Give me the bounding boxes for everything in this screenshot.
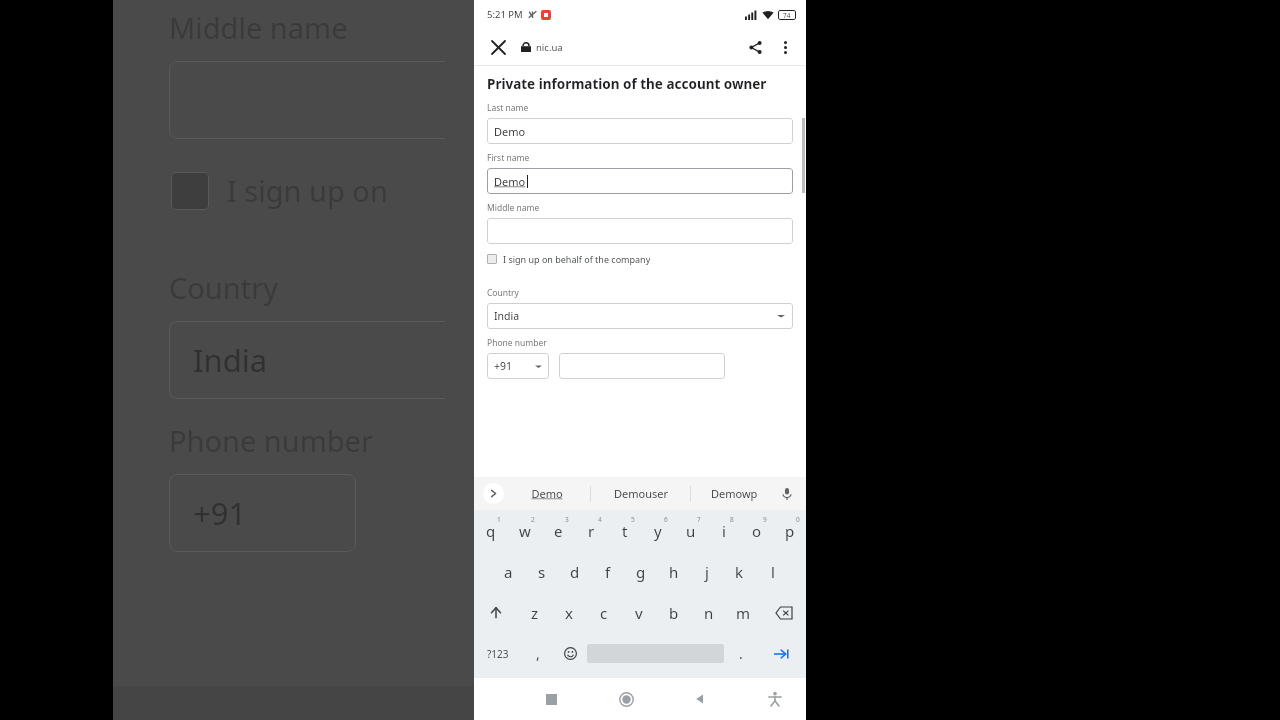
staticText: 5 bbox=[631, 515, 635, 524]
button[interactable]: Home bbox=[609, 682, 643, 716]
button[interactable]: Demouser bbox=[591, 477, 690, 510]
button[interactable]: Backspace bbox=[761, 592, 806, 633]
staticText: v bbox=[635, 603, 643, 623]
button[interactable] bbox=[487, 218, 793, 244]
button[interactable]: v bbox=[621, 592, 656, 633]
staticText: First name bbox=[487, 152, 530, 164]
staticText: 3 bbox=[565, 515, 569, 524]
staticText: 7 bbox=[697, 515, 701, 524]
staticText: I sign up on behalf of the company bbox=[559, 171, 806, 210]
button[interactable]: y bbox=[641, 510, 674, 551]
staticText: l bbox=[771, 562, 775, 582]
staticText: 1 bbox=[497, 515, 501, 524]
button[interactable]: India bbox=[487, 303, 793, 329]
staticText: w bbox=[519, 521, 531, 541]
staticText: n bbox=[704, 603, 714, 623]
staticText: I sign up on behalf of the company bbox=[503, 253, 651, 265]
button[interactable]: Demowp bbox=[691, 477, 777, 510]
button[interactable]: Demo bbox=[487, 118, 793, 144]
staticText: Demo bbox=[494, 174, 526, 189]
button[interactable]: More options bbox=[772, 34, 798, 60]
button[interactable] bbox=[559, 353, 725, 379]
staticText: Phone number bbox=[487, 337, 547, 349]
button[interactable]: x bbox=[552, 592, 586, 633]
staticText: g bbox=[636, 562, 646, 582]
staticText: ?123 bbox=[487, 647, 509, 661]
staticText: i bbox=[722, 521, 726, 541]
button[interactable]: Demo bbox=[504, 477, 590, 510]
button[interactable]: +91 bbox=[487, 353, 549, 379]
button[interactable]: Voice input bbox=[777, 484, 797, 504]
staticText: q bbox=[486, 521, 496, 541]
staticText: India bbox=[494, 309, 520, 323]
staticText: Demouser bbox=[614, 486, 668, 501]
staticText: Middle name bbox=[487, 202, 540, 214]
button[interactable]: Accessibility bbox=[758, 682, 792, 716]
staticText: Country bbox=[169, 268, 278, 307]
button[interactable]: h bbox=[657, 551, 690, 592]
button[interactable]: i bbox=[707, 510, 740, 551]
button[interactable]: d bbox=[558, 551, 591, 592]
button[interactable]: Shift bbox=[474, 592, 518, 633]
button[interactable]: Close bbox=[487, 36, 509, 58]
staticText: d bbox=[570, 562, 580, 582]
button[interactable]: . bbox=[724, 633, 757, 674]
staticText: Country bbox=[501, 268, 610, 307]
button[interactable]: u bbox=[674, 510, 707, 551]
staticText: Demo bbox=[494, 124, 526, 139]
button[interactable]: b bbox=[656, 592, 691, 633]
button[interactable]: z bbox=[518, 592, 552, 633]
button[interactable]: ?123 bbox=[474, 633, 522, 674]
button[interactable]: q bbox=[474, 510, 508, 551]
staticText: I sign up on behalf of the company bbox=[227, 171, 474, 210]
staticText: c bbox=[600, 603, 608, 623]
button[interactable]: m bbox=[726, 592, 761, 633]
button[interactable]: Demo bbox=[487, 168, 793, 194]
button[interactable]: o bbox=[740, 510, 773, 551]
button[interactable]: w bbox=[508, 510, 542, 551]
staticText: Middle name bbox=[501, 8, 680, 47]
button[interactable]: g bbox=[624, 551, 657, 592]
staticText: Last name bbox=[487, 102, 529, 114]
button[interactable]: Back bbox=[683, 682, 717, 716]
staticText: 4 bbox=[598, 515, 602, 524]
button[interactable]: l bbox=[756, 551, 789, 592]
button[interactable]: t bbox=[608, 510, 641, 551]
button[interactable]: Emoji bbox=[554, 633, 587, 674]
button[interactable]: f bbox=[591, 551, 624, 592]
staticText: Middle name bbox=[169, 8, 348, 47]
button[interactable]: Recent apps bbox=[534, 682, 568, 716]
staticText: +91 bbox=[193, 492, 247, 534]
staticText: , bbox=[536, 644, 540, 663]
button[interactable]: a bbox=[492, 551, 525, 592]
staticText: Private information of the account owner bbox=[487, 75, 767, 93]
staticText: +91 bbox=[494, 359, 513, 373]
staticText: z bbox=[531, 603, 539, 623]
button[interactable]: p bbox=[773, 510, 806, 551]
button[interactable]: Expand toolbar bbox=[483, 483, 504, 504]
staticText: +91 bbox=[525, 492, 579, 534]
staticText: 0 bbox=[796, 515, 800, 524]
button[interactable]: j bbox=[690, 551, 723, 592]
staticText: m bbox=[736, 603, 751, 623]
button[interactable]: Share bbox=[742, 34, 768, 60]
button[interactable]: Next field bbox=[757, 633, 806, 674]
button[interactable]: c bbox=[586, 592, 621, 633]
button[interactable]: n bbox=[691, 592, 726, 633]
staticText: f bbox=[605, 562, 611, 582]
staticText: Country bbox=[487, 287, 519, 299]
staticText: u bbox=[686, 521, 696, 541]
staticText: a bbox=[504, 562, 513, 582]
button[interactable]: I sign up on behalf of the company bbox=[487, 253, 793, 265]
staticText: p bbox=[785, 521, 795, 541]
staticText: b bbox=[669, 603, 679, 623]
button[interactable]: e bbox=[542, 510, 575, 551]
button[interactable]: s bbox=[525, 551, 558, 592]
staticText: s bbox=[538, 562, 546, 582]
button[interactable]: , bbox=[522, 633, 554, 674]
button[interactable]: k bbox=[723, 551, 756, 592]
staticText: r bbox=[588, 521, 595, 541]
button[interactable]: r bbox=[575, 510, 608, 551]
